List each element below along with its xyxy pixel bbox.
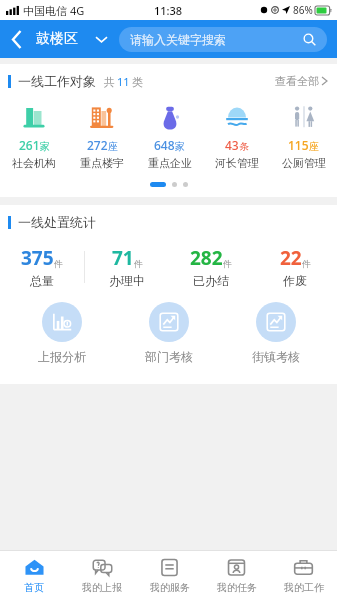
staticText: 条 <box>239 140 249 153</box>
staticText: 河长管理 <box>215 156 259 170</box>
staticText: 一线工作对象 <box>18 73 96 89</box>
staticText: 11 <box>117 74 130 89</box>
staticText: 首页 <box>24 581 44 594</box>
staticText: 282 <box>190 245 223 271</box>
staticText: 11:38 <box>154 3 183 18</box>
staticText: 一线处置统计 <box>18 214 96 230</box>
button[interactable]: 71 <box>85 245 169 288</box>
staticText: 件 <box>134 258 143 269</box>
staticText: 共 <box>104 75 115 89</box>
staticText: 街镇考核 <box>252 349 300 364</box>
button[interactable]: 上报分析 <box>8 302 115 364</box>
staticText: 鼓楼区 <box>36 30 78 48</box>
staticText: 重点楼宇 <box>80 156 124 170</box>
staticText: 272 <box>87 137 108 153</box>
staticText: 上报分析 <box>38 349 86 364</box>
staticText: 查看全部 <box>275 74 319 88</box>
button[interactable]: 街镇考核 <box>222 302 329 364</box>
button[interactable]: 115 <box>270 100 337 172</box>
button[interactable]: 查看全部 <box>275 70 327 92</box>
staticText: 我的上报 <box>82 581 122 594</box>
staticText: 件 <box>302 258 311 269</box>
staticText: 座 <box>309 140 319 153</box>
staticText: 648 <box>154 137 175 153</box>
staticText: 家 <box>175 140 185 153</box>
button[interactable]: 282 <box>169 245 253 288</box>
staticText: 86% <box>293 3 313 17</box>
button[interactable]: 我的任务 <box>203 551 270 600</box>
staticText: 已办结 <box>193 273 229 288</box>
staticText: 作废 <box>283 273 307 288</box>
button[interactable]: 我的服务 <box>136 551 203 600</box>
button[interactable]: 272 <box>68 100 136 172</box>
staticText: 我的任务 <box>217 581 257 594</box>
staticText: 重点企业 <box>148 156 192 170</box>
staticText: 4G <box>70 3 85 18</box>
staticText: 部门考核 <box>145 349 193 364</box>
staticText: 中国电信 <box>23 4 67 18</box>
button[interactable]: 我的工作 <box>270 551 337 600</box>
staticText: 43 <box>225 137 239 153</box>
button[interactable]: 375 <box>0 245 84 288</box>
staticText: 115 <box>288 137 309 153</box>
staticText: 件 <box>223 258 232 269</box>
staticText: 公厕管理 <box>282 156 326 170</box>
staticText: 22 <box>280 245 302 271</box>
button[interactable]: 648 <box>136 100 203 172</box>
button[interactable]: 我的上报 <box>68 551 136 600</box>
staticText: 座 <box>108 140 118 153</box>
staticText: 总量 <box>30 273 54 288</box>
button[interactable]: Back <box>0 20 34 58</box>
button[interactable]: 261 <box>0 100 68 172</box>
staticText: 办理中 <box>109 273 145 288</box>
button[interactable]: 首页 <box>0 551 68 600</box>
button[interactable]: 部门考核 <box>115 302 222 364</box>
staticText: 我的工作 <box>284 581 324 594</box>
button[interactable]: 请输入关键字搜索 <box>119 27 327 52</box>
staticText: 261 <box>19 137 40 153</box>
staticText: 社会机构 <box>12 156 56 170</box>
staticText: 类 <box>132 75 143 89</box>
staticText: 71 <box>112 245 134 271</box>
button[interactable]: 22 <box>253 245 337 288</box>
button[interactable]: 43 <box>203 100 270 172</box>
staticText: 请输入关键字搜索 <box>130 32 303 47</box>
staticText: 我的服务 <box>150 581 190 594</box>
staticText: 家 <box>40 140 50 153</box>
staticText: 件 <box>54 258 63 269</box>
button[interactable]: 鼓楼区 <box>34 30 109 48</box>
staticText: 375 <box>21 245 54 271</box>
